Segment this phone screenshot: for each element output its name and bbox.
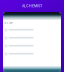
button[interactable] [3,26,61,34]
button[interactable] [3,34,61,42]
staticText: Live [7,21,13,25]
button[interactable] [3,50,61,58]
staticText: ALCHEMIST [22,4,42,8]
button[interactable] [3,42,61,50]
